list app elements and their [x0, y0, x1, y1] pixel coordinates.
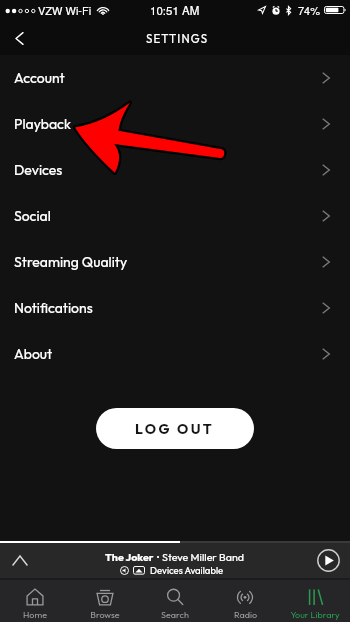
staticText: SETTINGS — [146, 31, 209, 45]
button[interactable]: Browse — [70, 580, 140, 622]
staticText: LOG OUT — [135, 420, 215, 438]
staticText: Radio — [234, 609, 257, 620]
button[interactable]: Home — [0, 580, 70, 622]
button[interactable]: Social — [0, 193, 350, 239]
button[interactable]: Streaming Quality — [0, 239, 350, 285]
staticText: Search — [161, 609, 189, 620]
staticText: 74% — [298, 2, 321, 18]
staticText: Streaming Quality — [14, 253, 128, 271]
staticText: Playback — [14, 115, 71, 133]
staticText: Notifications — [14, 299, 93, 317]
button[interactable]: Account — [0, 55, 350, 101]
staticText: Devices — [14, 161, 63, 179]
button[interactable]: Your Library — [280, 580, 350, 622]
staticText: • Steve Miller Band — [154, 550, 245, 563]
button[interactable]: Notifications — [0, 285, 350, 331]
button[interactable]: LOG OUT — [96, 408, 254, 449]
staticText: Social — [14, 207, 51, 225]
staticText: VZW Wi-Fi — [38, 2, 92, 18]
button[interactable]: Radio — [210, 580, 280, 622]
staticText: Account — [14, 69, 65, 87]
button[interactable]: Search — [140, 580, 210, 622]
staticText: 10:51 AM — [150, 2, 200, 18]
button[interactable]: Playback — [0, 101, 350, 147]
staticText: About — [14, 345, 53, 363]
button[interactable]: Expand player — [0, 543, 40, 578]
staticText: Devices Available — [150, 564, 224, 576]
button[interactable]: Back — [0, 20, 40, 55]
staticText: Your Library — [290, 609, 340, 620]
button[interactable]: Devices — [0, 147, 350, 193]
button[interactable]: About — [0, 331, 350, 377]
staticText: The Joker — [105, 550, 154, 563]
button[interactable]: Play — [317, 549, 340, 572]
staticText: Home — [23, 609, 47, 620]
staticText: Browse — [90, 609, 120, 620]
